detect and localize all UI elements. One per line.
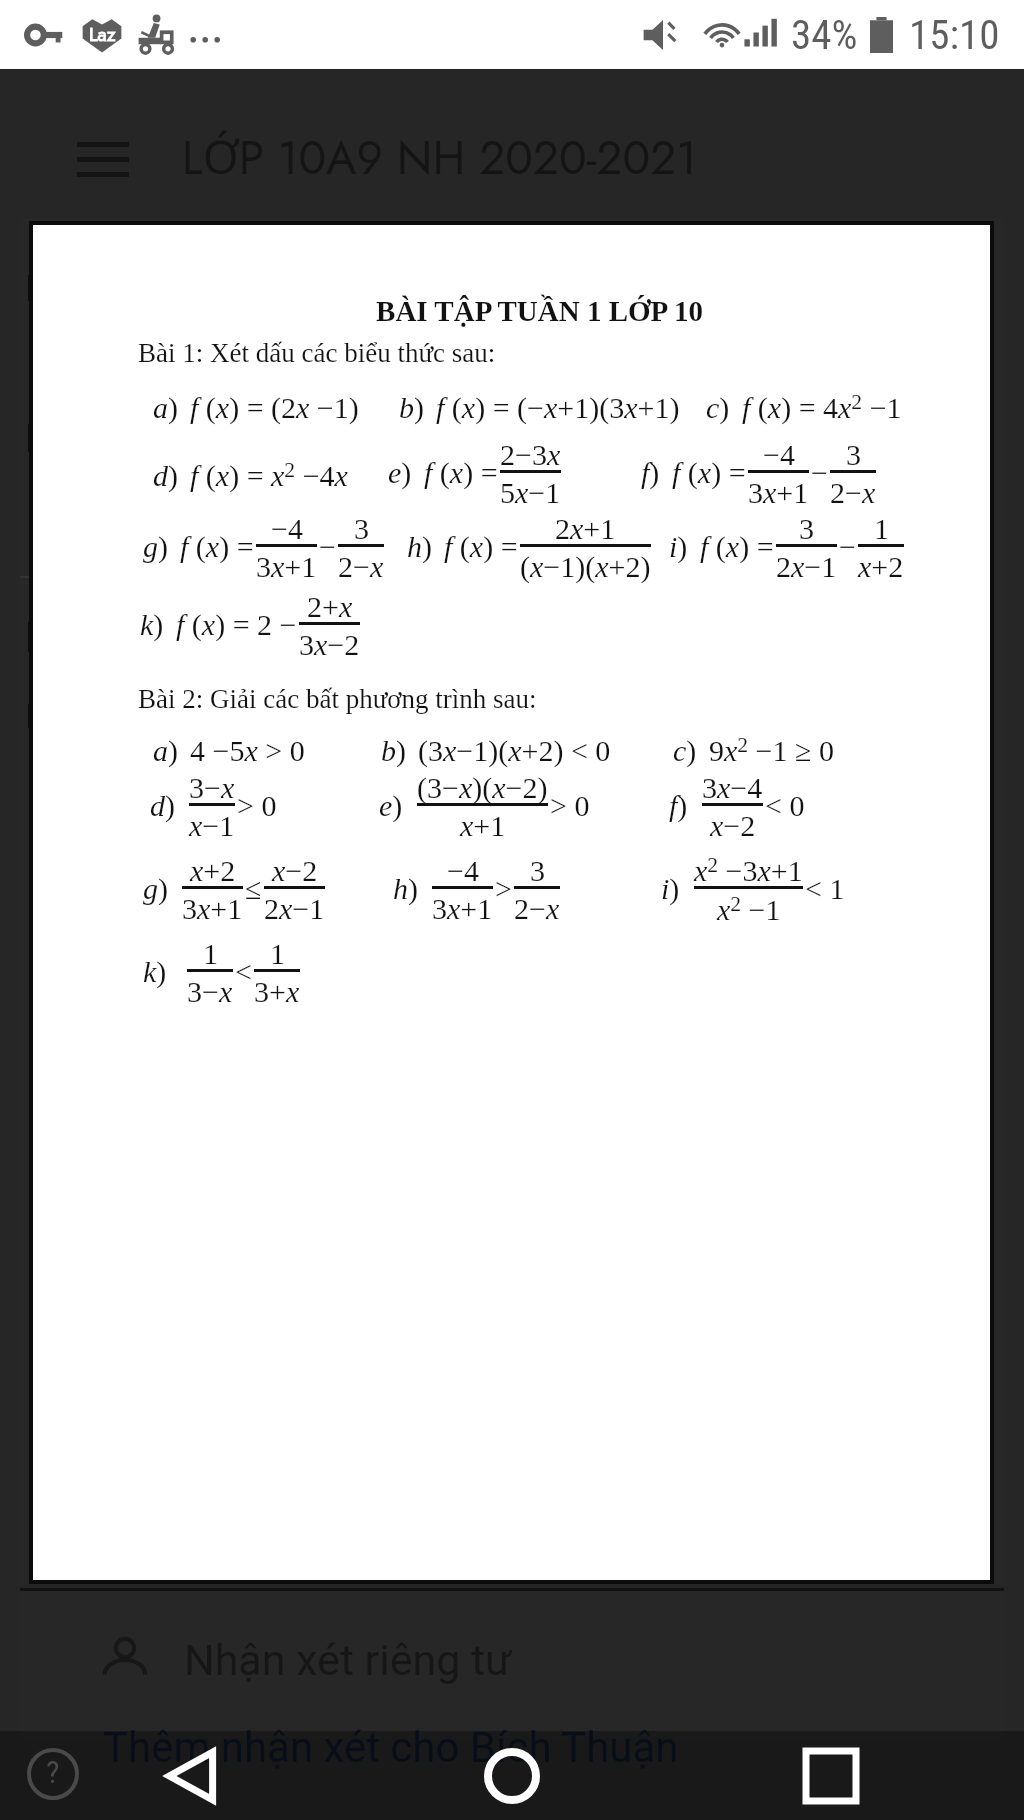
staticText: x2 −3x+1 <box>694 853 803 887</box>
staticText: LỚP 10A9 NH 2020-2021 <box>182 125 697 191</box>
staticText: −4 <box>271 512 303 545</box>
staticText: 34% <box>791 11 858 59</box>
staticText: Bài 1: Xét dấu các biểu thức sau: <box>138 338 496 368</box>
staticText: < 1 <box>805 872 845 905</box>
staticText: 5x−1 <box>500 476 561 509</box>
staticText: i) <box>669 530 688 563</box>
staticText: g) <box>143 872 168 905</box>
staticText: − <box>839 530 856 563</box>
staticText: 3 <box>846 438 861 471</box>
staticText: c) <box>673 734 697 767</box>
staticText: −4 <box>447 854 479 887</box>
staticText: k) <box>140 608 164 641</box>
staticText: f (x) = (2x −1) <box>190 391 359 424</box>
staticText: − <box>811 456 828 489</box>
staticText: a) <box>153 391 178 424</box>
staticText: 15:10 <box>909 11 1000 59</box>
staticText: 3−x <box>187 975 233 1008</box>
staticText: h) <box>393 872 418 905</box>
staticText: e) <box>388 456 412 489</box>
staticText: 9x2 −1 ≥ 0 <box>709 733 834 767</box>
staticText: Laz <box>89 21 116 48</box>
staticText: x+1 <box>460 809 506 842</box>
staticText: f (x) = <box>180 530 254 563</box>
staticText: f (x) = (−x+1)(3x+1) <box>436 391 680 424</box>
staticText: 3x+1 <box>182 892 243 925</box>
staticText: 3−x <box>189 771 235 804</box>
staticText: d) <box>153 459 178 492</box>
staticText: i) <box>661 872 680 905</box>
staticText: f (x) = <box>700 530 774 563</box>
staticText: 3x+1 <box>432 892 493 925</box>
staticText: (3x−1)(x+2) < 0 <box>418 734 611 767</box>
staticText: (x−1)(x+2) <box>520 550 651 583</box>
staticText: 3 <box>530 854 545 887</box>
staticText: > <box>495 872 512 905</box>
staticText: ≤ <box>245 872 262 905</box>
staticText: 2−x <box>830 476 876 509</box>
staticText: 2x+1 <box>555 512 616 545</box>
staticText: 1 <box>203 937 218 970</box>
staticText: > 0 <box>237 789 277 822</box>
button[interactable]: Thêm nhận xét cho Bích Thuận <box>103 1723 679 1772</box>
staticText: x−2 <box>272 854 318 887</box>
staticText: (3−x)(x−2) <box>417 771 548 804</box>
staticText: ? <box>46 1753 60 1791</box>
staticText: g) <box>143 530 168 563</box>
staticText: x−2 <box>710 809 756 842</box>
staticText: 3+x <box>254 975 300 1008</box>
staticText: 3 <box>799 512 814 545</box>
staticText: < <box>235 955 252 988</box>
staticText: 1 <box>874 512 889 545</box>
staticText: 3x−4 <box>702 771 763 804</box>
staticText: −4 <box>763 438 795 471</box>
button[interactable]: Open navigation drawer <box>59 126 147 196</box>
staticText: < 0 <box>765 789 805 822</box>
button[interactable]: Recent apps <box>786 1731 876 1820</box>
button[interactable]: Help <box>16 1737 90 1811</box>
staticText: x+2 <box>190 854 236 887</box>
staticText: f (x) = <box>444 530 518 563</box>
staticText: k) <box>143 955 167 988</box>
staticText: b) <box>399 391 424 424</box>
staticText: 3x−2 <box>299 628 360 661</box>
staticText: h) <box>407 530 432 563</box>
staticText: 4 −5x > 0 <box>190 734 305 767</box>
staticText: 2+x <box>307 590 353 623</box>
staticText: 3 <box>354 512 369 545</box>
staticText: x+2 <box>858 550 904 583</box>
staticText: f) <box>641 456 660 489</box>
staticText: x2 −1 <box>717 892 781 926</box>
staticText: 2−x <box>514 892 560 925</box>
staticText: d) <box>150 789 175 822</box>
staticText: f (x) = 2 − <box>176 608 297 641</box>
staticText: > 0 <box>550 789 590 822</box>
staticText: 2x−1 <box>264 892 325 925</box>
staticText: c) <box>706 391 730 424</box>
staticText: 2−3x <box>500 438 561 471</box>
staticText: Bài 2: Giải các bất phương trình sau: <box>138 684 537 714</box>
staticText: f (x) = 4x2 −1 <box>742 390 902 424</box>
staticText: f (x) = <box>424 456 498 489</box>
staticText: a) <box>153 734 178 767</box>
staticText: − <box>319 530 336 563</box>
staticText: 1 <box>270 937 285 970</box>
staticText: f (x) = <box>672 456 746 489</box>
button[interactable]: BÀI TẬP TUẦN 1 LỚP 10 <box>33 225 990 1580</box>
button[interactable]: Home <box>467 1731 557 1820</box>
staticText: f (x) = x2 −4x <box>190 458 348 492</box>
staticText: b) <box>381 734 406 767</box>
button[interactable]: Back <box>146 1731 236 1820</box>
staticText: e) <box>379 789 403 822</box>
staticText: x−1 <box>189 809 235 842</box>
staticText: Nhận xét riêng tư <box>184 1635 512 1685</box>
staticText: 3x+1 <box>748 476 809 509</box>
staticText: f) <box>669 789 688 822</box>
staticText: 3x+1 <box>256 550 317 583</box>
staticText: 2−x <box>338 550 384 583</box>
staticText: BÀI TẬP TUẦN 1 LỚP 10 <box>61 295 1018 327</box>
staticText: 2x−1 <box>776 550 837 583</box>
